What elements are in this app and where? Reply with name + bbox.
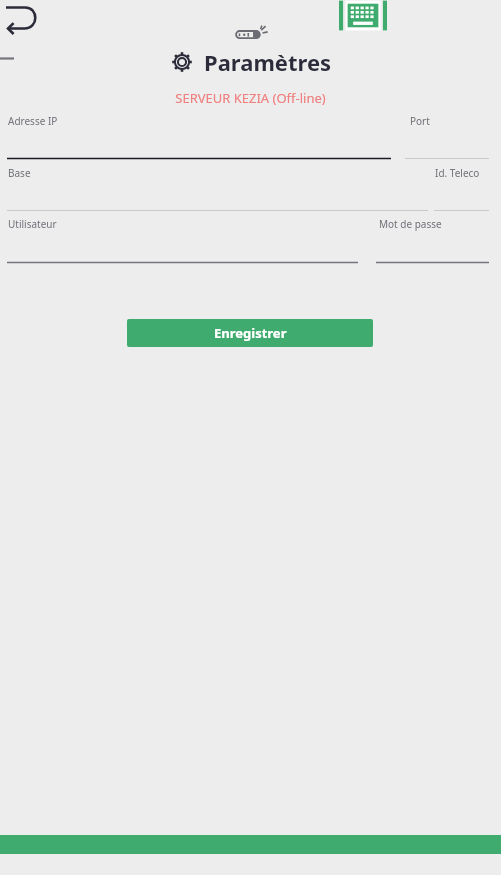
staticText: Id. Teleco (435, 166, 480, 180)
staticText: SERVEUR KEZIA (Off-line) (175, 89, 326, 107)
button[interactable]: Enregistrer (127, 319, 373, 347)
button[interactable]: Clavier (339, 0, 387, 31)
staticText: Enregistrer (214, 324, 287, 342)
staticText: Base (8, 166, 31, 180)
staticText: Mot de passe (379, 217, 442, 231)
staticText: Port (410, 114, 430, 128)
staticText: Adresse IP (8, 114, 58, 128)
button[interactable]: Retour (2, 2, 42, 36)
staticText: Paramètres (204, 47, 332, 77)
staticText: Utilisateur (8, 217, 57, 231)
